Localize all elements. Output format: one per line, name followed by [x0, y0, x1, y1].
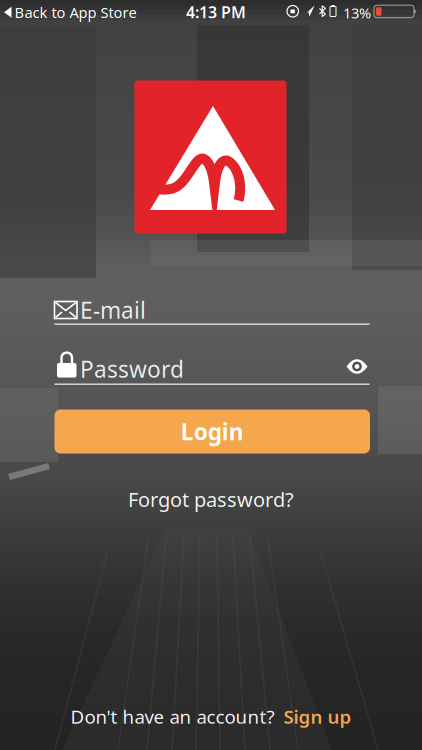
- staticText: Sign up: [283, 704, 351, 729]
- staticText: Don't have an account?: [70, 704, 274, 729]
- button[interactable]: Login: [54, 409, 370, 453]
- button[interactable]: Password: [54, 351, 369, 385]
- staticText: E-mail: [80, 295, 146, 325]
- button[interactable]: Forgot password?: [128, 486, 294, 513]
- staticText: Password: [80, 354, 184, 384]
- staticText: 4:13 PM: [186, 1, 246, 23]
- staticText: Login: [181, 416, 244, 446]
- button[interactable]: Back to App Store: [4, 2, 136, 22]
- button[interactable]: E-mail: [54, 295, 369, 326]
- staticText: 13%: [343, 3, 371, 22]
- button[interactable]: Sign up: [283, 704, 351, 729]
- staticText: Back to App Store: [14, 2, 136, 22]
- button[interactable]: Show password: [346, 360, 367, 373]
- staticText: Forgot password?: [128, 486, 294, 513]
